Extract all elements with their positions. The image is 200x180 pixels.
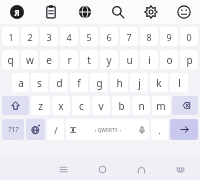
button[interactable]: Translate bbox=[68, 0, 101, 24]
button[interactable]: Shift bbox=[2, 96, 29, 115]
button[interactable]: k bbox=[150, 73, 168, 92]
staticText: 6 bbox=[106, 31, 112, 43]
staticText: b bbox=[118, 99, 125, 113]
button[interactable]: Enter bbox=[170, 119, 198, 140]
button[interactable]: p bbox=[180, 50, 198, 69]
button[interactable]: 3 bbox=[40, 27, 58, 46]
staticText: 7 bbox=[126, 31, 132, 43]
staticText: l bbox=[178, 76, 181, 90]
staticText: y bbox=[106, 53, 112, 67]
button[interactable]: 9 bbox=[160, 27, 178, 46]
button[interactable]: Emoji bbox=[167, 0, 200, 24]
staticText: e bbox=[46, 53, 52, 67]
button[interactable]: a bbox=[12, 73, 29, 92]
staticText: n bbox=[138, 99, 145, 113]
button[interactable]: w bbox=[21, 50, 38, 69]
staticText: o bbox=[166, 53, 173, 67]
staticText: m bbox=[156, 99, 166, 113]
staticText: › bbox=[118, 127, 121, 134]
button[interactable]: / bbox=[47, 119, 64, 140]
staticText: x bbox=[58, 99, 64, 113]
button[interactable]: Yandex assistant bbox=[0, 0, 34, 24]
button[interactable]: Space, QWERTY layout bbox=[66, 119, 149, 140]
staticText: Я bbox=[14, 7, 20, 18]
staticText: . bbox=[158, 124, 161, 136]
button[interactable]: v bbox=[92, 96, 110, 115]
staticText: k bbox=[156, 76, 162, 90]
button[interactable]: g bbox=[90, 73, 108, 92]
button[interactable]: 7 bbox=[120, 27, 138, 46]
button[interactable]: Change language bbox=[26, 119, 45, 140]
button[interactable]: e bbox=[40, 50, 58, 69]
button[interactable]: ?1? bbox=[2, 119, 24, 140]
button[interactable]: f bbox=[70, 73, 88, 92]
button[interactable]: Settings bbox=[134, 0, 167, 24]
button[interactable]: b bbox=[112, 96, 130, 115]
button[interactable]: 4 bbox=[60, 27, 78, 46]
button[interactable]: o bbox=[160, 50, 178, 69]
button[interactable]: Hide keyboard bbox=[161, 158, 200, 180]
button[interactable]: h bbox=[110, 73, 128, 92]
button[interactable]: Recent apps bbox=[44, 158, 83, 180]
button[interactable]: c bbox=[72, 96, 90, 115]
button[interactable]: Search bbox=[101, 0, 134, 24]
button[interactable]: r bbox=[60, 50, 78, 69]
button[interactable]: t bbox=[80, 50, 98, 69]
button[interactable]: Backspace bbox=[172, 96, 198, 115]
staticText: 5 bbox=[86, 31, 92, 43]
staticText: p bbox=[186, 53, 193, 67]
button[interactable]: d bbox=[50, 73, 68, 92]
staticText: f bbox=[77, 76, 81, 90]
staticText: 9 bbox=[166, 31, 172, 43]
staticText: g bbox=[96, 76, 103, 90]
button[interactable]: 1 bbox=[2, 27, 19, 46]
staticText: t bbox=[87, 53, 91, 67]
staticText: i bbox=[148, 53, 151, 67]
button[interactable]: Back bbox=[122, 158, 161, 180]
staticText: z bbox=[38, 99, 43, 113]
staticText: q bbox=[7, 53, 14, 67]
button[interactable]: l bbox=[170, 73, 188, 92]
button[interactable]: Home bbox=[83, 158, 122, 180]
button[interactable]: z bbox=[31, 96, 50, 115]
staticText: v bbox=[98, 99, 104, 113]
staticText: ?1? bbox=[8, 125, 19, 135]
button[interactable]: q bbox=[2, 50, 19, 69]
staticText: d bbox=[56, 76, 63, 90]
button[interactable]: . bbox=[151, 119, 168, 140]
button[interactable]: Clipboard bbox=[34, 0, 68, 24]
button[interactable]: 6 bbox=[100, 27, 118, 46]
button[interactable]: 2 bbox=[21, 27, 38, 46]
button[interactable]: x bbox=[52, 96, 70, 115]
staticText: a bbox=[18, 76, 24, 90]
button[interactable]: m bbox=[152, 96, 170, 115]
staticText: c bbox=[79, 99, 84, 113]
staticText: r bbox=[67, 53, 72, 67]
button[interactable]: u bbox=[120, 50, 138, 69]
button[interactable]: 5 bbox=[80, 27, 98, 46]
staticText: 3 bbox=[46, 31, 52, 43]
button[interactable]: i bbox=[140, 50, 158, 69]
button[interactable]: n bbox=[132, 96, 150, 115]
staticText: h bbox=[116, 76, 123, 90]
staticText: u bbox=[126, 53, 133, 67]
staticText: QWERTY bbox=[97, 127, 118, 134]
staticText: 0 bbox=[186, 31, 192, 43]
staticText: / bbox=[54, 124, 58, 136]
button[interactable]: s bbox=[31, 73, 48, 92]
staticText: 8 bbox=[146, 31, 152, 43]
staticText: w bbox=[26, 53, 34, 67]
button[interactable]: 0 bbox=[180, 27, 198, 46]
staticText: ‹ bbox=[94, 127, 97, 134]
button[interactable]: y bbox=[100, 50, 118, 69]
button[interactable]: j bbox=[130, 73, 148, 92]
staticText: 1 bbox=[8, 31, 14, 43]
staticText: s bbox=[37, 76, 42, 90]
staticText: 2 bbox=[27, 31, 33, 43]
staticText: 4 bbox=[66, 31, 72, 43]
button[interactable]: 8 bbox=[140, 27, 158, 46]
staticText: j bbox=[138, 76, 141, 90]
